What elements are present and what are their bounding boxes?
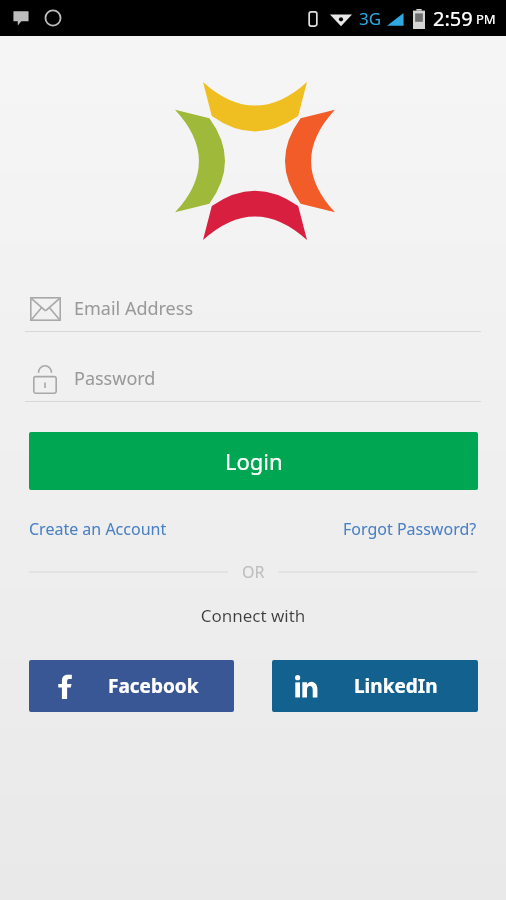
staticText: Email Address: [74, 296, 194, 321]
staticText: Login: [225, 446, 283, 476]
button[interactable]: Create an Account: [29, 514, 167, 544]
button[interactable]: LinkedIn: [272, 660, 478, 712]
staticText: OR: [242, 561, 265, 583]
staticText: Create an Account: [29, 518, 167, 540]
button[interactable]: Login: [29, 432, 478, 490]
button[interactable]: Forgot Password?: [343, 514, 477, 544]
button[interactable]: Email Address: [0, 286, 506, 332]
staticText: PM: [476, 10, 496, 28]
staticText: Facebook: [108, 673, 199, 699]
staticText: 3G: [359, 7, 382, 30]
staticText: Password: [74, 366, 156, 391]
staticText: Forgot Password?: [343, 518, 477, 540]
staticText: 2:59: [433, 5, 473, 32]
button[interactable]: Facebook: [29, 660, 234, 712]
button[interactable]: Password: [0, 356, 506, 402]
staticText: Connect with: [0, 604, 506, 627]
staticText: LinkedIn: [354, 673, 438, 699]
